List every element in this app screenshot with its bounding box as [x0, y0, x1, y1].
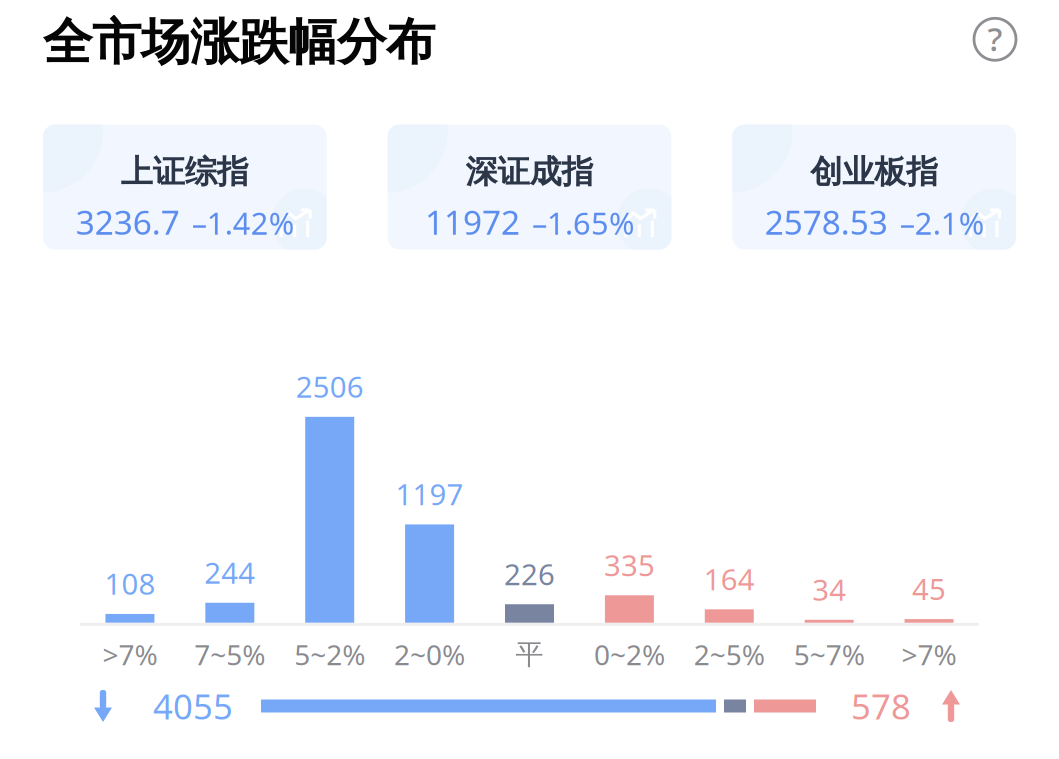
- staticText: >7%: [102, 636, 157, 673]
- staticText: 4055: [153, 683, 233, 729]
- staticText: 226: [504, 554, 555, 593]
- staticText: 2~5%: [694, 636, 765, 673]
- staticText: 244: [204, 553, 255, 592]
- staticText: 全市场涨跌幅分布: [43, 12, 435, 73]
- staticText: 108: [104, 564, 155, 603]
- staticText: 1197: [396, 474, 464, 513]
- staticText: 45: [912, 569, 946, 608]
- staticText: 578: [851, 683, 911, 729]
- staticText: 335: [604, 545, 655, 584]
- staticText: –1.42%: [192, 202, 294, 243]
- staticText: >7%: [902, 636, 957, 673]
- staticText: –1.65%: [532, 202, 634, 243]
- staticText: 3236.7: [76, 200, 180, 244]
- staticText: 2~0%: [394, 636, 465, 673]
- button[interactable]: 上证综指: [43, 125, 327, 250]
- staticText: ?: [987, 16, 1002, 60]
- staticText: 2578.53: [765, 200, 888, 244]
- staticText: 5~7%: [794, 636, 865, 673]
- staticText: 上证综指: [121, 152, 249, 192]
- button[interactable]: 创业板指: [732, 125, 1016, 250]
- staticText: 164: [704, 559, 755, 598]
- staticText: 深证成指: [465, 152, 593, 192]
- staticText: 5~2%: [294, 636, 365, 673]
- staticText: –2.1%: [900, 202, 984, 243]
- staticText: 34: [812, 570, 846, 609]
- staticText: 7~5%: [194, 636, 265, 673]
- button[interactable]: Help: [969, 13, 1021, 65]
- staticText: 创业板指: [810, 152, 938, 192]
- staticText: 0~2%: [594, 636, 665, 673]
- button[interactable]: 深证成指: [388, 125, 671, 250]
- staticText: 2506: [296, 367, 364, 406]
- staticText: 11972: [425, 200, 520, 244]
- staticText: 平: [515, 637, 543, 672]
